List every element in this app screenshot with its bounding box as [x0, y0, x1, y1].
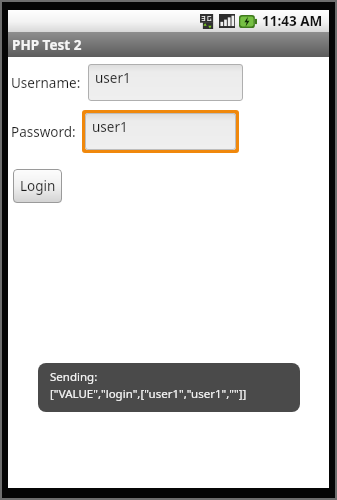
button[interactable]: Login	[13, 169, 62, 203]
staticText: user1	[95, 69, 131, 87]
staticText: user1	[92, 118, 128, 136]
staticText: Login	[20, 177, 56, 195]
button[interactable]: user1	[88, 64, 243, 101]
staticText: Sending:	[50, 369, 98, 385]
other: Signal strength	[219, 14, 235, 28]
staticText: 11:43 AM	[262, 12, 323, 30]
other: Battery charging	[239, 15, 257, 28]
button[interactable]: user1	[85, 113, 236, 150]
staticText: ["VALUE","login",["user1","user1",""]]	[50, 386, 247, 402]
staticText: PHP Test 2	[12, 36, 82, 54]
staticText: Password:	[11, 123, 76, 141]
staticText: Username:	[11, 74, 81, 92]
other: 3G data	[200, 14, 216, 29]
